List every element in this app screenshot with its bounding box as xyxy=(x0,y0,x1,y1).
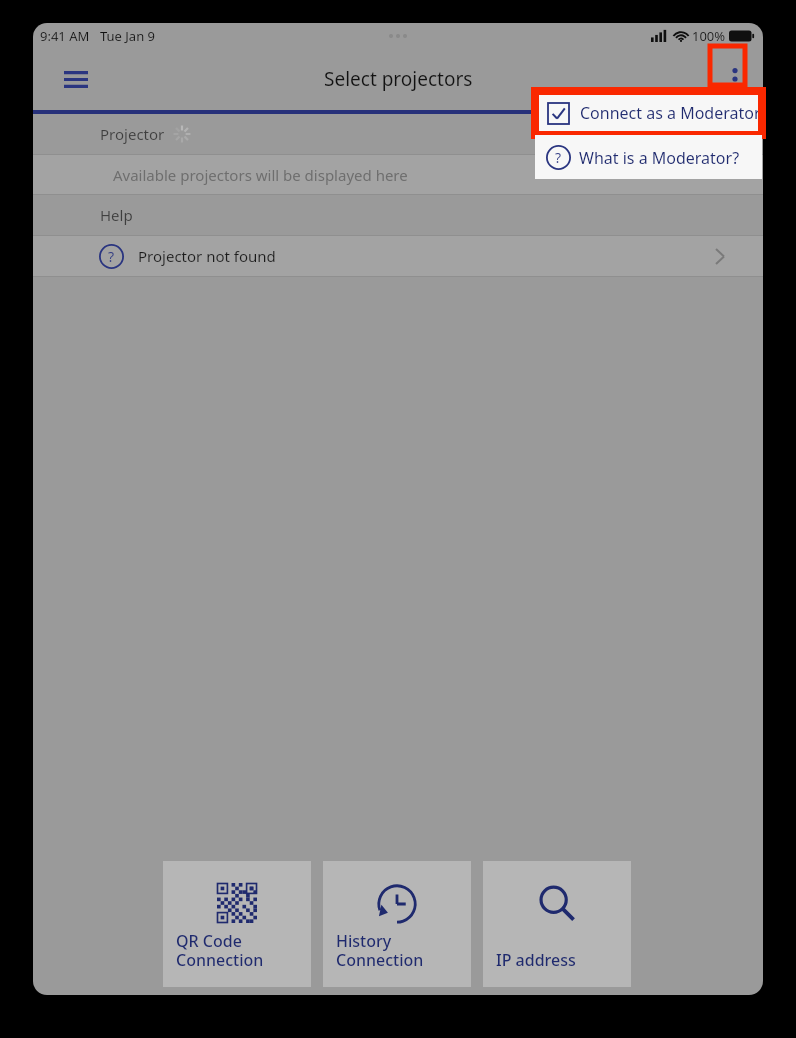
staticText: QR Code Connection xyxy=(176,930,264,971)
staticText: Help xyxy=(100,205,133,225)
staticText: Select projectors xyxy=(324,66,473,92)
staticText: Connect as a Moderator xyxy=(580,102,761,124)
button[interactable]: Connect as a Moderator xyxy=(535,91,762,135)
button[interactable]: QR Code Connection xyxy=(163,861,311,987)
button[interactable]: Menu xyxy=(54,57,98,101)
button[interactable]: More options xyxy=(713,57,757,101)
staticText: IP address xyxy=(496,949,576,971)
staticText: History Connection xyxy=(336,930,424,971)
staticText: Available projectors will be displayed h… xyxy=(113,165,408,185)
staticText: Projector xyxy=(100,124,165,144)
staticText: Projector not found xyxy=(138,246,276,266)
staticText: ? xyxy=(108,247,115,266)
button[interactable]: ? xyxy=(535,135,762,179)
staticText: What is a Moderator? xyxy=(579,147,740,169)
staticText: 9:41 AM xyxy=(40,27,90,45)
staticText: Tue Jan 9 xyxy=(100,27,156,45)
staticText: ? xyxy=(555,148,562,167)
button[interactable]: History Connection xyxy=(323,861,471,987)
staticText: 100% xyxy=(692,27,726,45)
button[interactable]: IP address xyxy=(483,861,631,987)
button[interactable]: ? xyxy=(33,236,763,276)
